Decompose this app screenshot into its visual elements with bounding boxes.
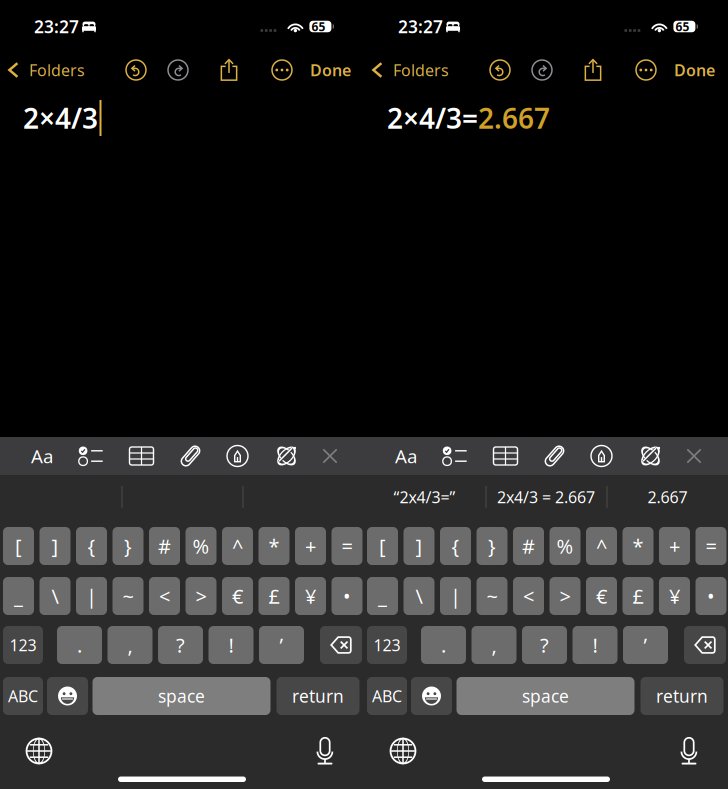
button[interactable]: Dictation [667,736,711,766]
button[interactable]: Next keyboard [381,736,425,766]
button[interactable]: + [295,527,326,565]
button[interactable]: , [107,626,152,664]
button[interactable]: Share [580,57,606,83]
button[interactable]: Folders [0,50,96,90]
button[interactable]: | [440,577,471,615]
button[interactable]: . [421,626,466,664]
button[interactable]: Folders [364,50,460,90]
button[interactable]: return [640,677,723,715]
button[interactable]: Redo [165,57,191,83]
button[interactable]: ^ [222,527,253,565]
button[interactable]: More [633,57,659,83]
button[interactable]: ’ [259,626,304,664]
button[interactable]: Delete [684,626,726,664]
button[interactable]: Attach file [168,437,213,475]
button[interactable]: } [476,527,507,565]
button[interactable]: Done [310,50,362,90]
button[interactable]: Attach file [532,437,577,475]
button[interactable]: • [695,577,726,615]
button[interactable]: Aa [18,437,66,475]
button[interactable]: % [185,527,216,565]
button[interactable]: ’ [623,626,668,664]
button[interactable]: * [622,527,653,565]
button[interactable]: Dictation [303,736,347,766]
button[interactable]: ! [208,626,253,664]
button[interactable]: Undo [487,57,513,83]
button[interactable]: “2x4/3=” [364,475,485,519]
button[interactable]: = [331,527,362,565]
button[interactable]: Checklist [66,437,115,475]
button[interactable]: 123 [367,626,407,664]
button[interactable]: [ [367,527,398,565]
button[interactable]: £ [258,577,289,615]
button[interactable]: < [513,577,544,615]
button[interactable]: [ [3,527,34,565]
button[interactable]: = [695,527,726,565]
button[interactable]: _ [3,577,34,615]
button[interactable]: { [76,527,107,565]
button[interactable]: Delete [320,626,362,664]
button[interactable]: ] [39,527,70,565]
button[interactable]: space [456,677,634,715]
button[interactable]: > [549,577,580,615]
button[interactable]: ? [158,626,203,664]
staticText: ^ [596,533,607,559]
button[interactable]: ¥ [659,577,690,615]
button[interactable]: * [258,527,289,565]
button[interactable]: { [440,527,471,565]
button[interactable]: , [471,626,516,664]
button[interactable]: # [149,527,180,565]
button[interactable]: • [331,577,362,615]
button[interactable]: \ [39,577,70,615]
button[interactable]: Undo [123,57,149,83]
button[interactable]: 2.667 [607,475,728,519]
button[interactable]: ! [572,626,617,664]
button[interactable]: ] [403,527,434,565]
button[interactable]: space [92,677,270,715]
button[interactable]: . [57,626,102,664]
button[interactable]: ? [522,626,567,664]
button[interactable]: More [269,57,295,83]
button[interactable]: 2x4/3 = 2.667 [485,475,607,519]
button[interactable]: ABC [367,677,407,715]
button[interactable]: Done [674,50,726,90]
button[interactable]: € [222,577,253,615]
button[interactable]: Aa [382,437,430,475]
button[interactable]: + [659,527,690,565]
button[interactable]: | [76,577,107,615]
button[interactable]: Next keyboard [17,736,61,766]
button[interactable]: Markup [577,437,626,475]
button[interactable]: < [149,577,180,615]
button[interactable]: # [513,527,544,565]
button[interactable]: ~ [476,577,507,615]
button[interactable]: Table [115,437,168,475]
button[interactable]: Hide keyboard [311,437,349,475]
button[interactable]: > [185,577,216,615]
button[interactable]: return [276,677,359,715]
button[interactable]: \ [403,577,434,615]
button[interactable]: Emoji [411,677,452,715]
button[interactable]: € [586,577,617,615]
button[interactable]: Share [216,57,242,83]
button[interactable]: Scan document [262,437,311,475]
button[interactable]: Table [479,437,532,475]
staticText: 2.667 [478,99,550,137]
button[interactable]: ~ [112,577,143,615]
button[interactable]: ¥ [295,577,326,615]
button[interactable]: Emoji [47,677,88,715]
button[interactable]: Scan document [626,437,675,475]
button[interactable]: Redo [529,57,555,83]
button[interactable]: ^ [586,527,617,565]
button[interactable]: ABC [3,677,43,715]
button[interactable]: } [112,527,143,565]
button[interactable]: _ [367,577,398,615]
button[interactable]: Markup [213,437,262,475]
button[interactable]: % [549,527,580,565]
button[interactable]: Checklist [430,437,479,475]
button[interactable]: 123 [3,626,43,664]
button[interactable]: Hide keyboard [675,437,713,475]
button[interactable]: £ [622,577,653,615]
